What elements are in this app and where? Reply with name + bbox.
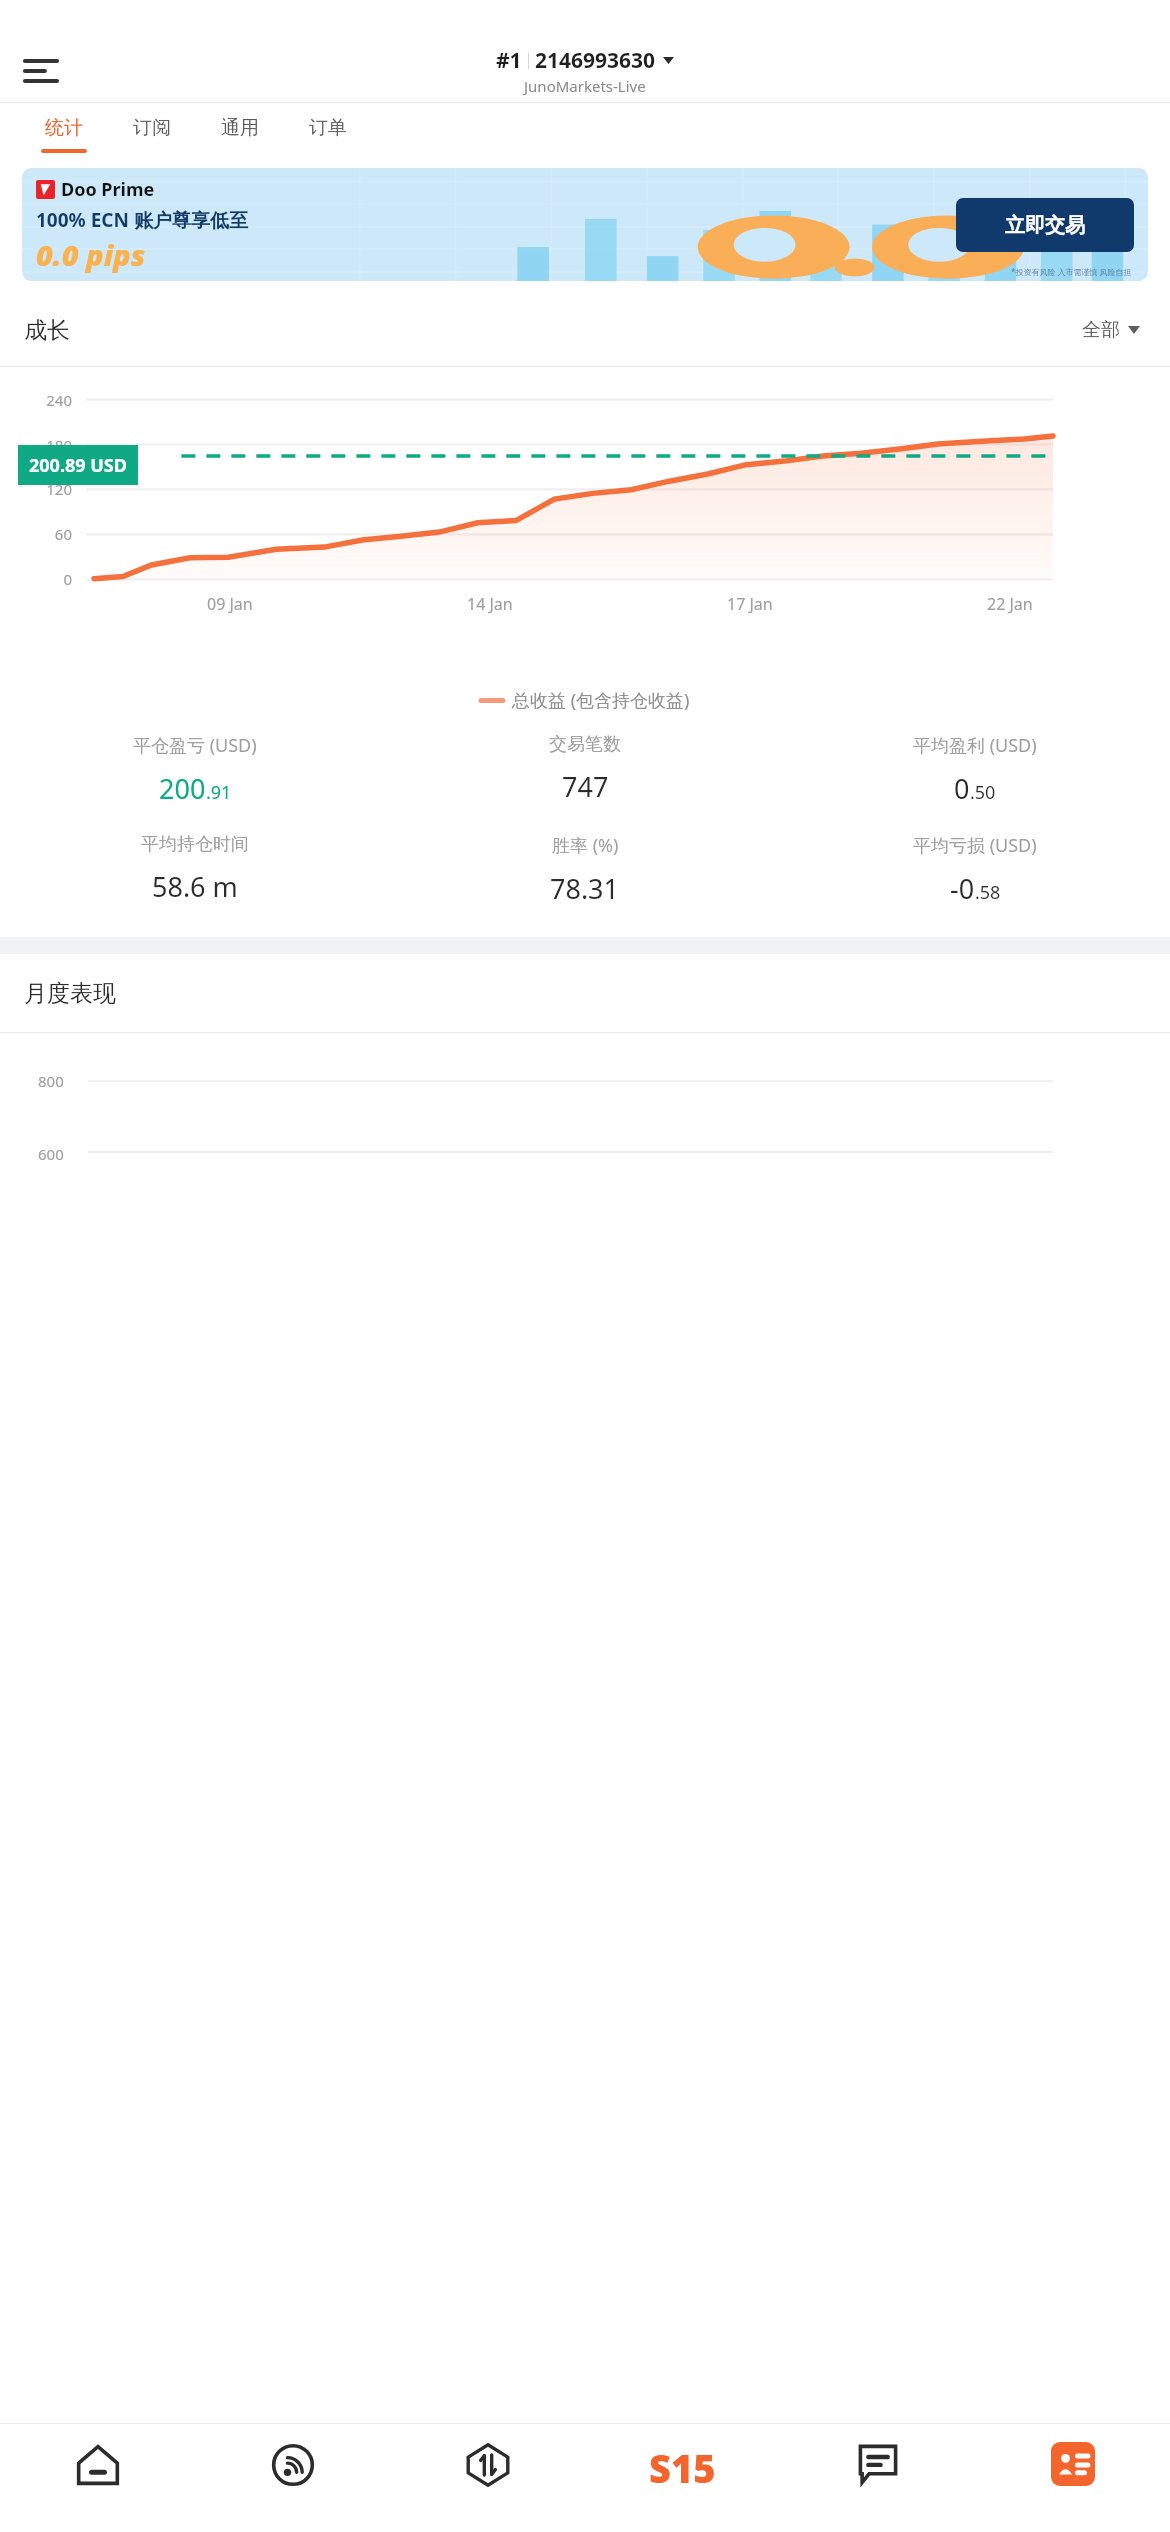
staticText: -0: [950, 870, 975, 907]
button[interactable]: #1: [488, 44, 682, 98]
button[interactable]: 平均盈利 (USD): [780, 733, 1170, 807]
staticText: 17 Jan: [727, 593, 773, 615]
staticText: 平均亏损 (USD): [913, 833, 1037, 858]
button[interactable]: 通用: [196, 102, 284, 161]
staticText: 747: [562, 768, 609, 805]
staticText: 成长: [24, 316, 70, 345]
staticText: 立即交易: [1005, 213, 1085, 238]
staticText: 78.31: [550, 870, 620, 907]
staticText: 统计: [45, 116, 83, 140]
staticText: .91: [206, 780, 232, 805]
button[interactable]: 交易笔数: [390, 733, 780, 805]
staticText: 总收益 (包含持仓收益): [512, 688, 690, 713]
staticText: 0.0 pips: [36, 235, 146, 274]
staticText: *投资有风险 入市需谨慎 风险自担: [1011, 266, 1132, 277]
staticText: .58: [975, 880, 1001, 905]
staticText: 09 Jan: [207, 593, 253, 615]
staticText: #1: [496, 46, 522, 75]
button[interactable]: Menu: [14, 44, 68, 98]
staticText: 180: [12, 435, 72, 455]
staticText: 交易笔数: [549, 733, 621, 756]
staticText: 平均盈利 (USD): [913, 733, 1037, 758]
staticText: 0: [12, 569, 72, 589]
staticText: 200: [159, 770, 206, 807]
staticText: 120: [12, 479, 72, 499]
button[interactable]: 平均亏损 (USD): [780, 833, 1170, 907]
staticText: 订单: [309, 116, 347, 140]
staticText: 100% ECN 账户尊享低至: [36, 207, 248, 233]
button[interactable]: Home: [0, 2424, 195, 2532]
staticText: 平均持仓时间: [141, 833, 249, 856]
button[interactable]: Trade: [390, 2424, 585, 2532]
staticText: 58.6 m: [152, 868, 238, 905]
staticText: 全部: [1082, 318, 1120, 342]
button[interactable]: 平仓盈亏 (USD): [0, 733, 390, 807]
staticText: 2146993630: [535, 46, 656, 75]
button[interactable]: 胜率 (%): [390, 833, 780, 907]
button[interactable]: 立即交易: [956, 198, 1134, 252]
staticText: 14 Jan: [467, 593, 513, 615]
staticText: 0: [954, 770, 970, 807]
staticText: 胜率 (%): [552, 833, 619, 858]
button[interactable]: Signals: [195, 2424, 390, 2532]
staticText: Doo Prime: [61, 177, 155, 202]
staticText: 22 Jan: [987, 593, 1033, 615]
staticText: .50: [970, 780, 996, 805]
staticText: 800: [38, 1071, 64, 1091]
button[interactable]: 订阅: [108, 102, 196, 161]
button[interactable]: 平均持仓时间: [0, 833, 390, 905]
button[interactable]: Account: [975, 2424, 1170, 2532]
staticText: S15: [649, 2442, 716, 2494]
staticText: 200.89 USD: [29, 453, 127, 478]
staticText: 通用: [221, 116, 259, 140]
staticText: 订阅: [133, 116, 171, 140]
staticText: 600: [38, 1144, 64, 1164]
staticText: 60: [12, 524, 72, 544]
button[interactable]: S15: [585, 2424, 780, 2532]
staticText: 月度表现: [24, 979, 116, 1008]
button[interactable]: Chat: [780, 2424, 975, 2532]
button[interactable]: Doo Prime: [22, 168, 1148, 281]
staticText: JunoMarkets-Live: [524, 76, 646, 96]
staticText: 240: [12, 390, 72, 410]
button[interactable]: 全部: [1076, 312, 1146, 348]
button[interactable]: 统计: [20, 102, 108, 161]
button[interactable]: 订单: [284, 102, 372, 161]
staticText: 平仓盈亏 (USD): [133, 733, 257, 758]
